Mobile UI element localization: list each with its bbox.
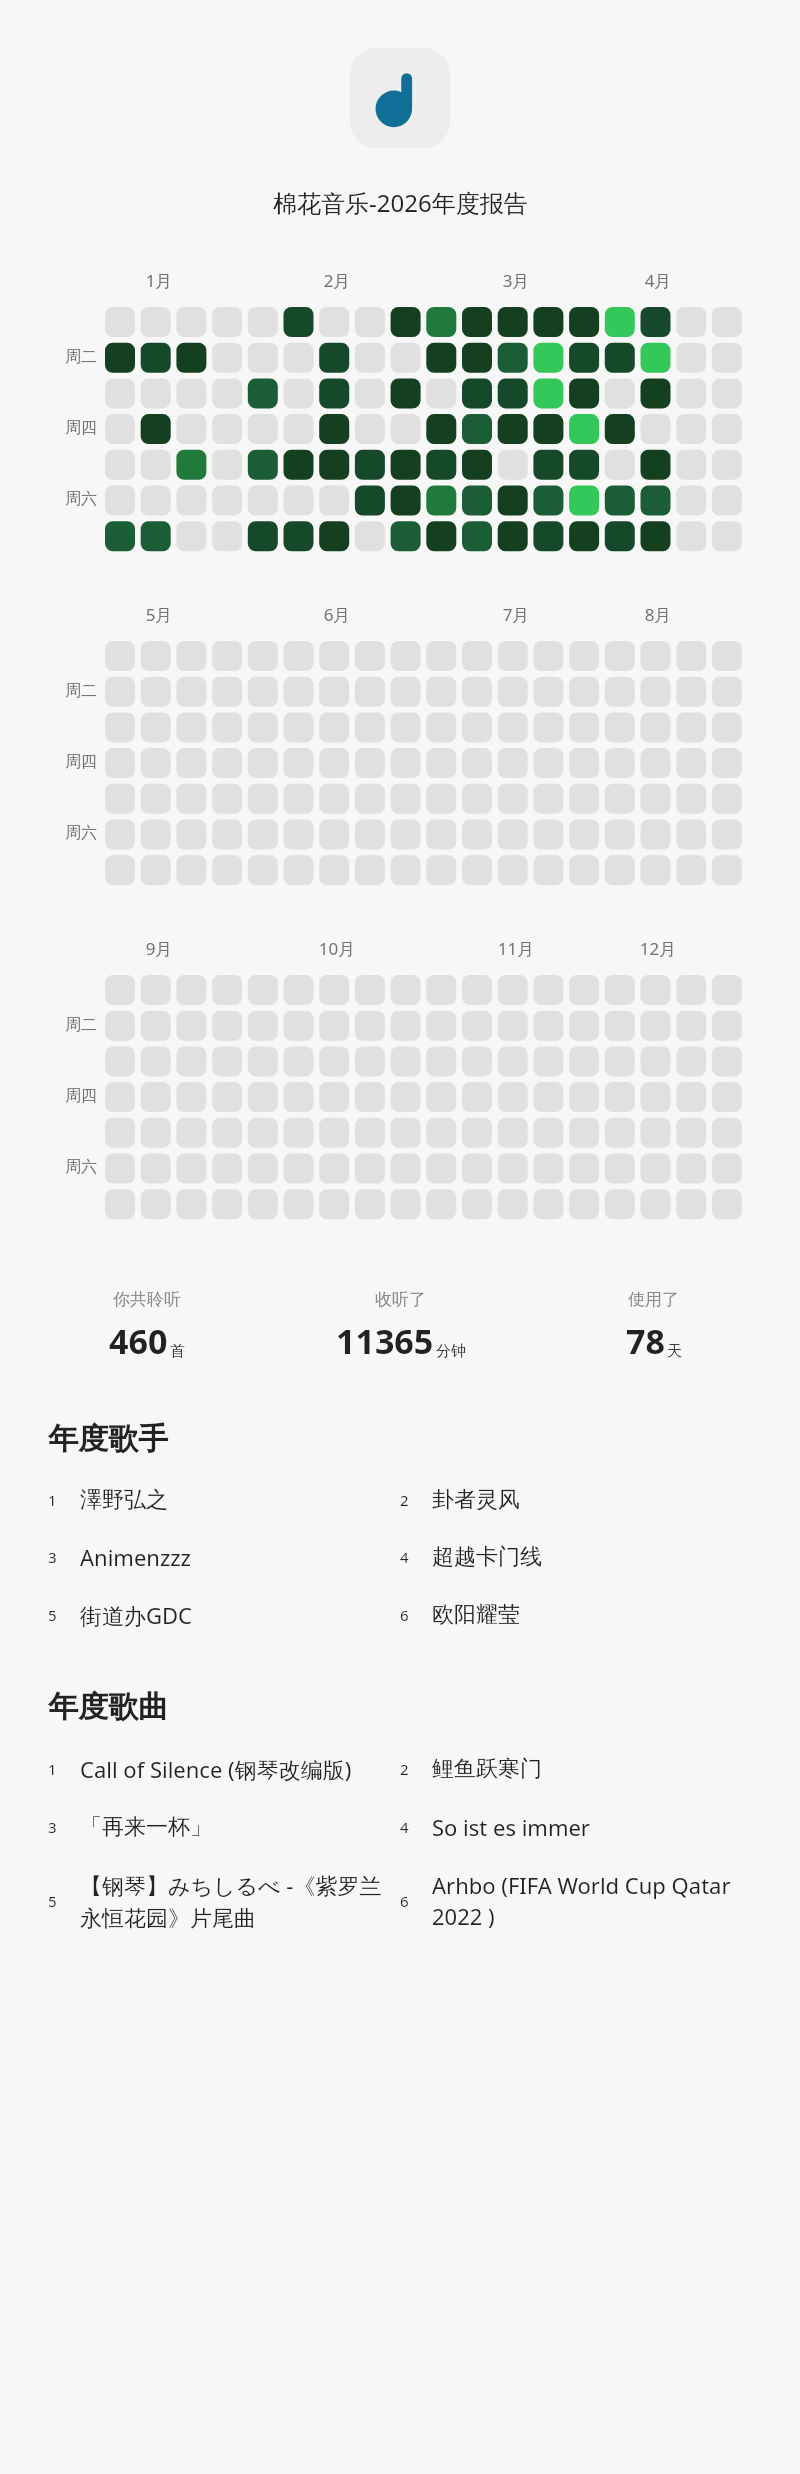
staticText: 5 [48, 1605, 74, 1625]
button[interactable]: 使用了 [527, 1289, 780, 1364]
button[interactable]: 5 [48, 1596, 400, 1634]
staticText: 78 [626, 1318, 665, 1364]
staticText: 年度歌曲 [48, 1688, 168, 1726]
staticText: 街道办GDC [80, 1600, 400, 1630]
staticText: 6月 [305, 603, 369, 626]
staticText: 11365 [336, 1318, 434, 1364]
button[interactable]: 6 [400, 1597, 752, 1633]
staticText: 年度歌手 [48, 1420, 168, 1458]
staticText: 澤野弘之 [80, 1486, 400, 1514]
staticText: 3月 [484, 269, 548, 292]
staticText: 3 [48, 1817, 74, 1837]
staticText: So ist es immer [432, 1812, 752, 1842]
staticText: 3 [48, 1547, 74, 1567]
staticText: 棉花音乐-2026年度报告 [273, 186, 528, 219]
staticText: 周四 [8, 752, 97, 772]
staticText: 首 [170, 1342, 185, 1361]
button[interactable]: 5 [48, 1866, 400, 1936]
button[interactable]: 2 [400, 1482, 752, 1518]
button[interactable]: 4 [400, 1808, 752, 1846]
staticText: 460 [109, 1318, 168, 1364]
staticText: 你共聆听 [113, 1289, 181, 1310]
button[interactable]: 6 [400, 1866, 752, 1936]
staticText: 4月 [626, 269, 690, 292]
staticText: 使用了 [628, 1289, 679, 1310]
staticText: 7月 [484, 603, 548, 626]
staticText: 6 [400, 1891, 426, 1911]
staticText: 9月 [127, 937, 191, 960]
staticText: 周二 [8, 1015, 97, 1035]
staticText: 4 [400, 1547, 426, 1567]
staticText: 11月 [484, 937, 548, 960]
button[interactable]: 棉花音乐 [350, 48, 450, 148]
staticText: 周四 [8, 1086, 97, 1106]
staticText: 2月 [305, 269, 369, 292]
button[interactable]: 1 [48, 1750, 400, 1788]
staticText: 周六 [8, 1157, 97, 1177]
button[interactable]: 1 [48, 1482, 400, 1518]
staticText: 2 [400, 1759, 426, 1779]
staticText: 欧阳耀莹 [432, 1601, 752, 1629]
staticText: 12月 [626, 937, 690, 960]
staticText: 周六 [8, 823, 97, 843]
staticText: 1 [48, 1759, 74, 1779]
button[interactable]: 3 [48, 1538, 400, 1576]
button[interactable]: 2 [400, 1751, 752, 1787]
staticText: Animenzzz [80, 1542, 400, 1572]
staticText: 「再来一杯」 [80, 1813, 400, 1841]
staticText: 周四 [8, 418, 97, 438]
staticText: 1月 [127, 269, 191, 292]
staticText: 5 [48, 1891, 74, 1911]
staticText: 10月 [305, 937, 369, 960]
staticText: 周二 [8, 347, 97, 367]
staticText: 8月 [626, 603, 690, 626]
button[interactable]: 收听了 [274, 1289, 527, 1364]
staticText: 周六 [8, 489, 97, 509]
staticText: 1 [48, 1490, 74, 1510]
button[interactable]: 你共聆听 [20, 1289, 274, 1364]
button[interactable]: 3 [48, 1809, 400, 1845]
staticText: 超越卡门线 [432, 1543, 752, 1571]
staticText: 2 [400, 1490, 426, 1510]
staticText: 收听了 [375, 1289, 426, 1310]
staticText: 5月 [127, 603, 191, 626]
staticText: 6 [400, 1605, 426, 1625]
staticText: 鲤鱼跃寒门 [432, 1755, 752, 1783]
staticText: Arhbo (FIFA World Cup Qatar 2022 ) [432, 1870, 752, 1932]
staticText: 天 [667, 1342, 682, 1361]
staticText: Call of Silence (钢琴改编版) [80, 1754, 400, 1784]
staticText: 周二 [8, 681, 97, 701]
staticText: 卦者灵风 [432, 1486, 752, 1514]
button[interactable]: 4 [400, 1539, 752, 1575]
staticText: 【钢琴】みちしるべ -《紫罗兰永恒花园》片尾曲 [80, 1870, 400, 1932]
staticText: 4 [400, 1817, 426, 1837]
staticText: 分钟 [436, 1342, 466, 1361]
